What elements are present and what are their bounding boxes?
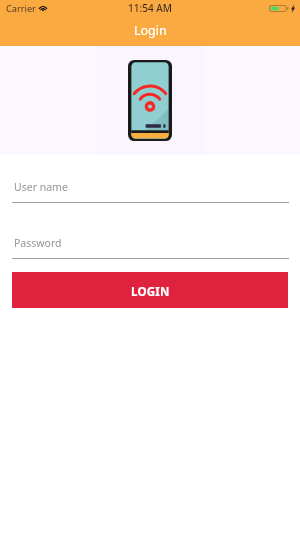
other: Battery charging (269, 5, 288, 12)
staticText: Carrier (6, 2, 36, 15)
button[interactable]: LOGIN (12, 272, 288, 308)
staticText: LOGIN (131, 284, 170, 300)
staticText: 11:54 AM (128, 1, 172, 15)
staticText: User name (14, 180, 68, 194)
staticText: Login (134, 22, 167, 39)
other: Wi-Fi signal (38, 4, 48, 11)
button[interactable]: Password (0, 203, 300, 259)
button[interactable]: User name (0, 155, 300, 203)
staticText: Password (14, 236, 62, 250)
